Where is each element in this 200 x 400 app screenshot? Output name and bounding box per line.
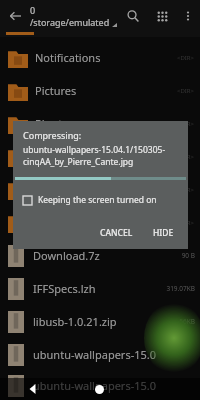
button[interactable]: Pictures	[0, 74, 200, 107]
button[interactable]: Alarms	[0, 206, 200, 239]
staticText: IFFSpecs.lzh	[33, 281, 166, 296]
staticText: Download.7z	[33, 248, 181, 263]
staticText: <DIR>	[176, 186, 194, 194]
button[interactable]: More options	[176, 4, 200, 28]
staticText: <DIR>	[176, 153, 194, 161]
staticText: Compressing:	[23, 129, 82, 141]
button[interactable]: CANCEL	[94, 224, 139, 242]
button[interactable]: ubuntu-wallpapers-15.0	[0, 371, 200, 400]
button[interactable]: IFFSpecs.lzh	[0, 272, 200, 305]
staticText: Notifications	[35, 50, 176, 65]
button[interactable]: Ringtones	[0, 107, 200, 140]
staticText: <DIR>	[176, 120, 194, 128]
button[interactable]: HIDE	[147, 224, 180, 242]
staticText: ubuntu-wallpapers-15.04.1/150305-cinqAA_…	[23, 144, 180, 168]
staticText: HIDE	[153, 227, 174, 239]
staticText: Podcasts	[35, 182, 176, 197]
staticText: <DIR>	[176, 54, 194, 62]
staticText: Pictures	[35, 83, 176, 98]
staticText: ubuntu-wallpapers-15.0	[33, 378, 200, 393]
staticText: CANCEL	[100, 227, 133, 239]
button[interactable]: Notifications	[0, 41, 200, 74]
button[interactable]: Movies	[0, 140, 200, 173]
button[interactable]: Search	[118, 1, 148, 31]
staticText: Keeping the screen turned on	[38, 194, 157, 206]
staticText: Alarms	[35, 215, 176, 230]
button[interactable]: Home	[66, 378, 133, 400]
button[interactable]: Back	[0, 378, 66, 400]
staticText: 56KB	[179, 317, 195, 326]
staticText: 90 B	[181, 251, 195, 260]
staticText: ubuntu-wallpapers-15.0	[33, 347, 200, 362]
button[interactable]: Back	[0, 1, 30, 31]
staticText: libusb-1.0.21.zip	[33, 314, 179, 329]
staticText: <DIR>	[176, 87, 194, 95]
staticText: <DIR>	[176, 219, 194, 227]
button[interactable]: Grid view	[148, 2, 176, 30]
staticText: Ringtones	[35, 116, 176, 131]
button[interactable]: Keeping the screen turned on	[13, 192, 188, 208]
staticText: 319.07KB	[166, 284, 195, 293]
button[interactable]: Download.7z	[0, 239, 200, 272]
staticText: /storage/emulated	[30, 16, 110, 28]
staticText: Movies	[35, 149, 176, 164]
button[interactable]: libusb-1.0.21.zip	[0, 305, 200, 338]
button[interactable]: Podcasts	[0, 173, 200, 206]
staticText: 0	[30, 4, 36, 16]
button[interactable]: ubuntu-wallpapers-15.0	[0, 338, 200, 371]
